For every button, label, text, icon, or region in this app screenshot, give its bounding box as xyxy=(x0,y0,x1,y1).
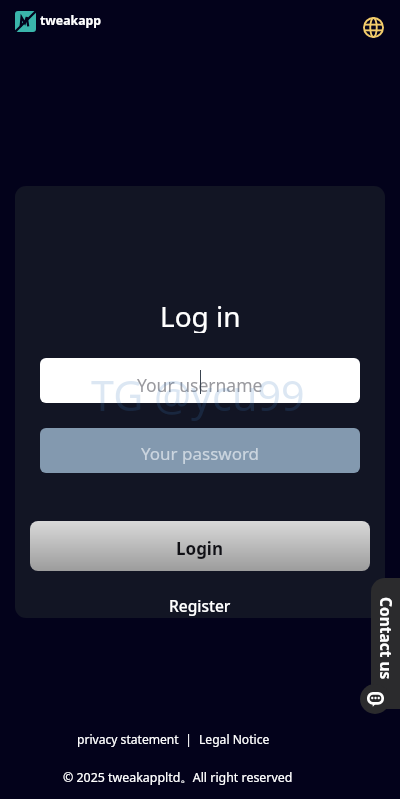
button[interactable]: Your password xyxy=(40,428,360,473)
staticText: TG @ycu99 xyxy=(91,367,305,423)
button[interactable]: Login xyxy=(30,521,370,571)
staticText: Log in xyxy=(160,297,241,333)
button[interactable]: Chat support xyxy=(360,684,390,714)
staticText: Login xyxy=(176,537,224,560)
button[interactable]: Language xyxy=(358,12,389,43)
staticText: Register xyxy=(169,595,231,616)
staticText: Contact us xyxy=(376,597,397,680)
button[interactable]: Legal Notice xyxy=(199,731,270,747)
staticText: © 2025 tweakappltd。All right reserved xyxy=(63,769,293,786)
button[interactable] xyxy=(371,578,400,709)
button[interactable]: Register xyxy=(140,591,260,619)
staticText: Your password xyxy=(141,442,260,465)
staticText: tweakapp xyxy=(40,12,102,29)
button[interactable]: privacy statement xyxy=(77,731,179,747)
staticText: | xyxy=(179,731,199,747)
button[interactable]: Your username xyxy=(40,358,360,403)
staticText: Your username xyxy=(137,373,263,397)
button[interactable]: tweakapp xyxy=(15,11,102,32)
